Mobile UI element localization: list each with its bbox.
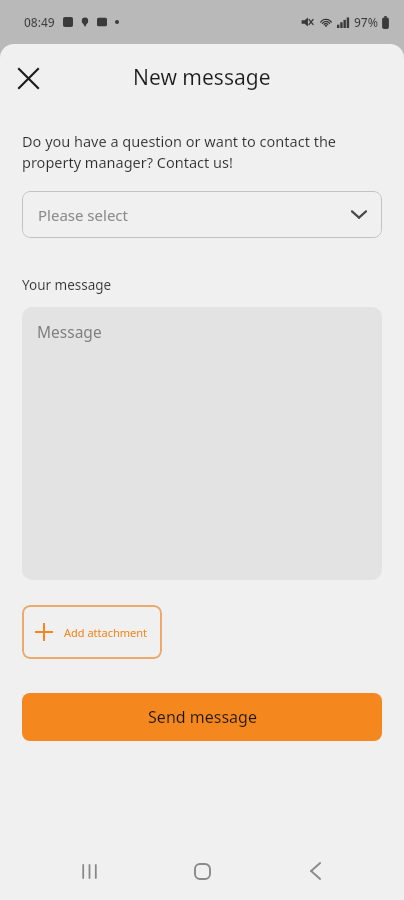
staticText: Send message: [148, 706, 257, 728]
staticText: Your message: [22, 276, 112, 294]
button[interactable]: Back: [291, 847, 339, 895]
staticText: Add attachment: [64, 625, 148, 640]
staticText: Message: [37, 321, 102, 342]
button[interactable]: Send message: [22, 693, 382, 741]
staticText: 08:49: [24, 14, 55, 30]
button[interactable]: Please select: [22, 191, 382, 238]
button[interactable]: Close: [8, 58, 48, 98]
button[interactable]: Recent apps: [65, 847, 113, 895]
button[interactable]: Add attachment: [22, 605, 162, 659]
staticText: 97%: [354, 14, 378, 30]
button[interactable]: Home: [178, 847, 226, 895]
staticText: Please select: [38, 205, 128, 225]
button[interactable]: Message: [22, 307, 382, 580]
staticText: Do you have a question or want to contac…: [22, 131, 370, 173]
staticText: New message: [133, 63, 271, 92]
